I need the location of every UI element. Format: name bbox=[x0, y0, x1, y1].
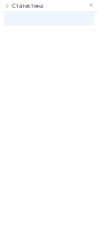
staticText: ✕ bbox=[89, 2, 93, 9]
button[interactable]: Close bbox=[86, 0, 96, 10]
staticText: ‹ bbox=[6, 0, 8, 11]
staticText: Статистика bbox=[12, 2, 43, 9]
button[interactable]: Back bbox=[2, 0, 12, 10]
